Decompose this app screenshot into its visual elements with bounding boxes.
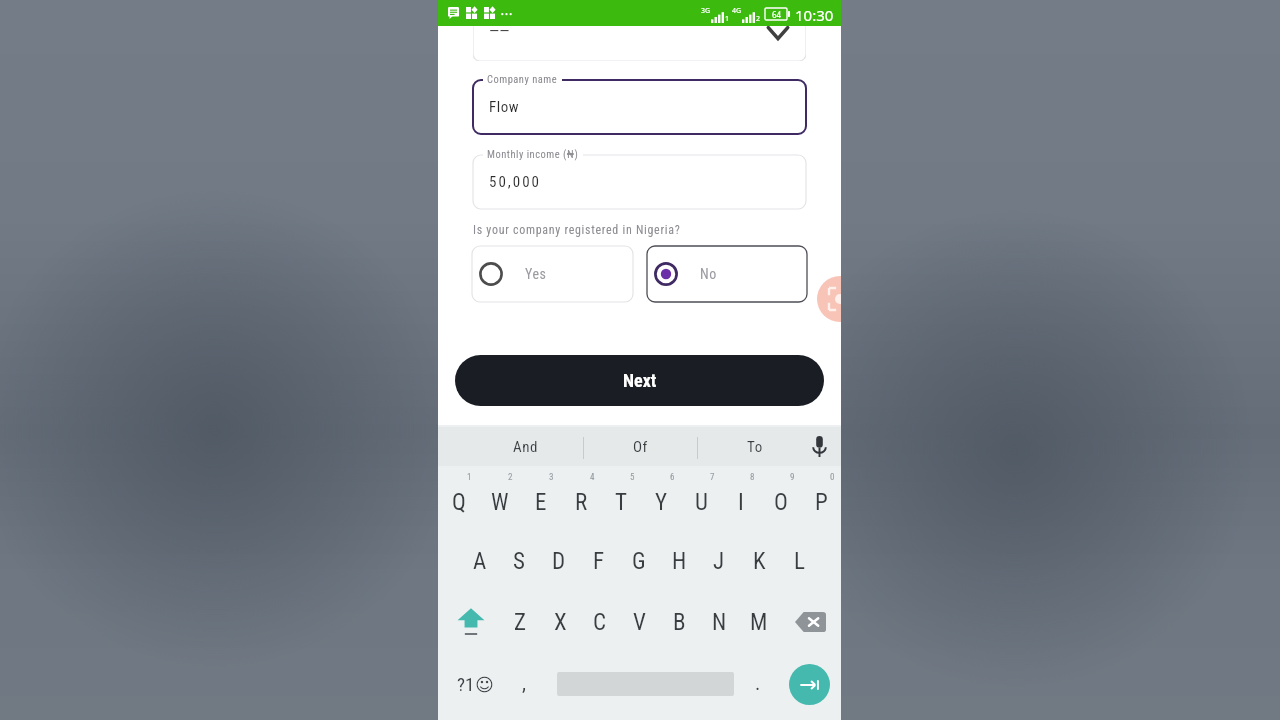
staticText: 3G bbox=[701, 6, 711, 16]
button[interactable]: 6 bbox=[641, 476, 681, 526]
staticText: Is your company registered in Nigeria? bbox=[473, 223, 681, 237]
staticText: 7 bbox=[710, 472, 715, 483]
button[interactable]: F bbox=[579, 541, 619, 581]
button[interactable]: Enter bbox=[783, 659, 835, 709]
button[interactable]: 2 bbox=[479, 476, 520, 526]
button[interactable]: Shift bbox=[450, 602, 491, 642]
staticText: To bbox=[747, 438, 763, 456]
staticText: 4G bbox=[732, 6, 742, 16]
button[interactable]: No bbox=[647, 246, 807, 302]
staticText: 6 bbox=[670, 472, 675, 483]
staticText: C bbox=[593, 609, 607, 636]
staticText: U bbox=[695, 489, 708, 516]
staticText: Yes bbox=[525, 266, 547, 282]
staticText: 3 bbox=[549, 472, 554, 483]
staticText: E bbox=[535, 489, 547, 516]
staticText: A bbox=[473, 548, 487, 575]
button[interactable]: , bbox=[506, 659, 542, 709]
staticText: L bbox=[794, 548, 805, 575]
button[interactable]: Symbols and emoji bbox=[444, 659, 506, 709]
staticText: 0 bbox=[830, 472, 835, 483]
staticText: I bbox=[738, 489, 744, 516]
staticText: 1 bbox=[725, 14, 730, 24]
staticText: B bbox=[673, 609, 686, 636]
staticText: 1 bbox=[467, 472, 472, 483]
button[interactable]: A bbox=[460, 541, 499, 581]
staticText: K bbox=[753, 548, 766, 575]
staticText: P bbox=[815, 489, 828, 516]
staticText: 64 bbox=[772, 9, 782, 20]
staticText: N bbox=[712, 609, 727, 636]
staticText: No bbox=[700, 266, 717, 282]
button[interactable]: B bbox=[659, 602, 699, 642]
staticText: ☺ bbox=[475, 674, 494, 695]
button[interactable]: V bbox=[619, 602, 659, 642]
button[interactable]: Of bbox=[584, 427, 697, 466]
staticText: Z bbox=[514, 609, 527, 636]
button[interactable]: 7 bbox=[681, 476, 721, 526]
button[interactable]: And bbox=[468, 427, 583, 466]
button[interactable]: G bbox=[619, 541, 659, 581]
staticText: Company name bbox=[487, 73, 558, 85]
button[interactable]: C bbox=[580, 602, 620, 642]
button[interactable]: 9 bbox=[761, 476, 801, 526]
button[interactable]: Backspace bbox=[790, 602, 831, 642]
staticText: Y bbox=[655, 489, 668, 516]
button[interactable]: S bbox=[499, 541, 539, 581]
staticText: 50,000 bbox=[489, 173, 541, 191]
button[interactable]: L bbox=[779, 541, 819, 581]
staticText: F bbox=[593, 548, 605, 575]
staticText: D bbox=[552, 548, 566, 575]
staticText: Monthly income (₦) bbox=[487, 148, 579, 160]
staticText: 9 bbox=[790, 472, 795, 483]
button[interactable]: J bbox=[699, 541, 739, 581]
staticText: V bbox=[633, 609, 646, 636]
button[interactable]: N bbox=[699, 602, 739, 642]
staticText: And bbox=[513, 438, 539, 456]
staticText: 10:30 bbox=[795, 5, 834, 25]
button[interactable]: 0 bbox=[801, 476, 841, 526]
button[interactable]: . bbox=[741, 659, 775, 709]
button[interactable]: To bbox=[698, 427, 811, 466]
button[interactable]: 8 bbox=[721, 476, 761, 526]
staticText: 2 bbox=[756, 14, 761, 24]
staticText: R bbox=[575, 489, 588, 516]
staticText: 4 bbox=[590, 472, 595, 483]
staticText: Of bbox=[633, 438, 648, 456]
button[interactable]: 1 bbox=[438, 476, 479, 526]
staticText: , bbox=[522, 671, 526, 694]
staticText: Q bbox=[452, 489, 466, 516]
button[interactable]: Voice input bbox=[798, 427, 841, 466]
button[interactable]: 5 bbox=[601, 476, 641, 526]
button[interactable]: H bbox=[659, 541, 699, 581]
button[interactable]: Monthly income (₦) bbox=[473, 155, 806, 209]
staticText: S bbox=[513, 548, 525, 575]
staticText: H bbox=[672, 548, 687, 575]
staticText: M bbox=[750, 609, 768, 636]
button[interactable]: Screenshot tool bbox=[817, 276, 841, 322]
staticText: T bbox=[615, 489, 627, 516]
staticText: —— bbox=[489, 22, 510, 40]
button[interactable]: Next bbox=[455, 355, 824, 406]
button[interactable]: 4 bbox=[561, 476, 601, 526]
staticText: 5 bbox=[630, 472, 635, 483]
button[interactable]: Z bbox=[500, 602, 540, 642]
staticText: X bbox=[554, 609, 567, 636]
button[interactable]: —— bbox=[473, 20, 806, 61]
staticText: W bbox=[491, 489, 509, 516]
staticText: . bbox=[755, 671, 761, 694]
button[interactable]: D bbox=[539, 541, 579, 581]
staticText: J bbox=[713, 548, 725, 575]
button[interactable]: M bbox=[739, 602, 779, 642]
staticText: O bbox=[774, 489, 788, 516]
staticText: ?1 bbox=[457, 673, 475, 695]
button[interactable]: Yes bbox=[472, 246, 633, 302]
staticText: Flow bbox=[489, 98, 519, 116]
staticText: 8 bbox=[750, 472, 755, 483]
button[interactable]: 3 bbox=[520, 476, 561, 526]
button[interactable]: K bbox=[739, 541, 779, 581]
button[interactable]: X bbox=[540, 602, 580, 642]
staticText: G bbox=[632, 548, 646, 575]
button[interactable]: Company name bbox=[473, 80, 806, 134]
button[interactable] bbox=[542, 659, 748, 709]
